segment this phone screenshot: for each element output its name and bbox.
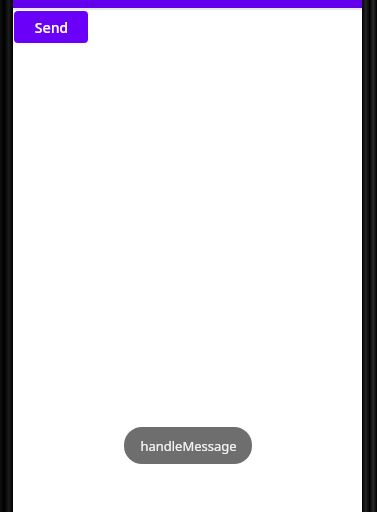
button[interactable]: Send (14, 11, 88, 43)
button[interactable]: handleMessage toast (124, 427, 252, 464)
staticText: Send (34, 18, 68, 37)
staticText: handleMessage (140, 437, 237, 455)
